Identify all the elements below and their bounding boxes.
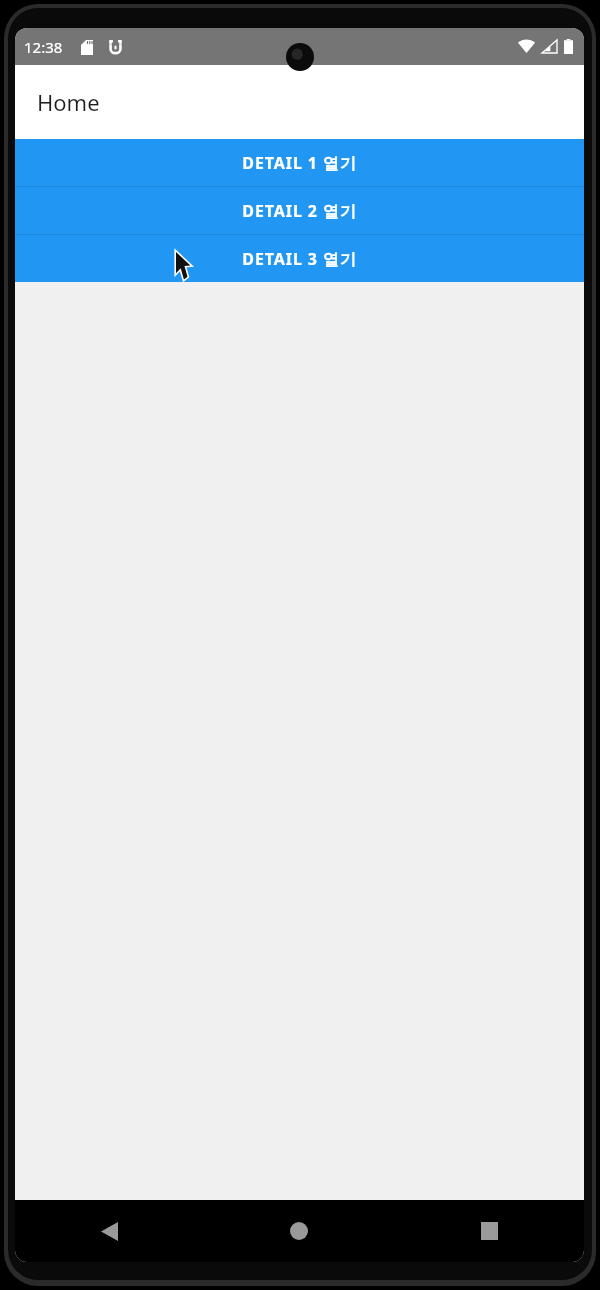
button[interactable]: DETAIL 3 열기 [15, 235, 584, 282]
button[interactable]: Home [204, 1200, 394, 1262]
staticText: DETAIL 3 열기 [242, 248, 357, 270]
staticText: 12:38 [24, 37, 63, 57]
button[interactable]: DETAIL 2 열기 [15, 187, 584, 234]
staticText: DETAIL 1 열기 [242, 152, 357, 174]
staticText: DETAIL 2 열기 [242, 200, 357, 222]
button[interactable]: DETAIL 1 열기 [15, 139, 584, 186]
staticText: Home [37, 87, 100, 117]
button[interactable]: Back [15, 1200, 204, 1262]
button[interactable]: Recents [394, 1200, 584, 1262]
